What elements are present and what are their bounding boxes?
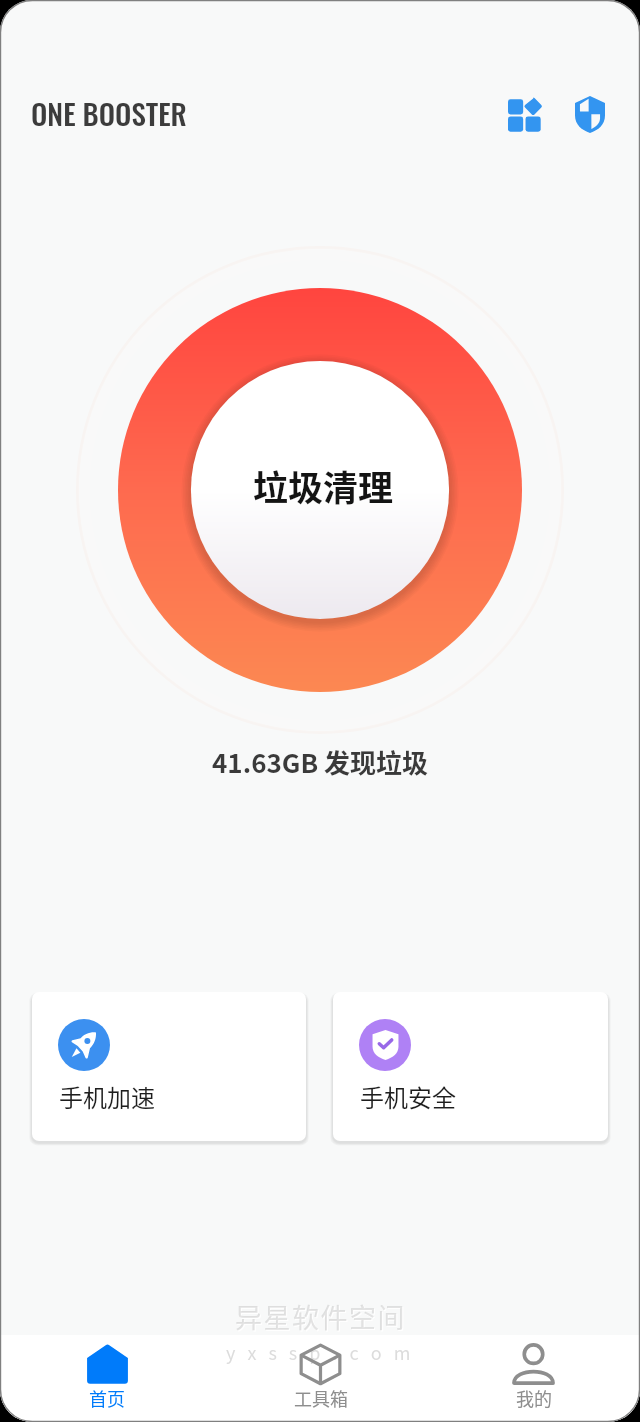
staticText: 工具箱 bbox=[294, 1385, 348, 1411]
staticText: 我的 bbox=[516, 1385, 552, 1411]
staticText: 首页 bbox=[89, 1385, 125, 1411]
button[interactable]: Apps bbox=[494, 84, 554, 144]
staticText: ONE BOOSTER bbox=[31, 91, 187, 134]
button[interactable]: 工具箱 bbox=[214, 1340, 427, 1411]
staticText: 异星软件空间 bbox=[235, 1297, 406, 1336]
staticText: y x s s p . c o m bbox=[227, 1340, 416, 1366]
staticText: y x s s p . c o m bbox=[226, 1339, 415, 1365]
staticText: 手机加速 bbox=[59, 1079, 155, 1114]
button[interactable]: 手机安全 bbox=[333, 992, 608, 1141]
button[interactable]: Security bbox=[560, 84, 620, 144]
button[interactable]: 首页 bbox=[0, 1340, 214, 1411]
staticText: 异星软件空间 bbox=[236, 1298, 407, 1337]
button[interactable]: 手机加速 bbox=[32, 992, 306, 1141]
staticText: 垃圾清理 bbox=[253, 460, 394, 511]
staticText: 手机安全 bbox=[360, 1079, 456, 1114]
button[interactable]: Junk clean bbox=[118, 288, 522, 692]
staticText: 41.63GB 发现垃圾 bbox=[212, 743, 429, 781]
button[interactable]: 我的 bbox=[427, 1340, 640, 1411]
